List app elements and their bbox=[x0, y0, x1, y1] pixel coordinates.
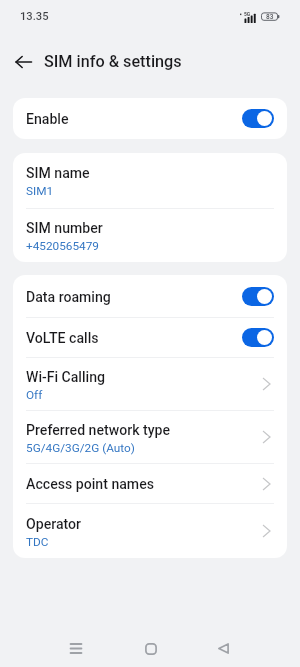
staticText: Enable bbox=[26, 111, 69, 128]
button[interactable]: Recent apps bbox=[53, 626, 98, 667]
button[interactable]: Wi-Fi Calling bbox=[13, 358, 287, 410]
button[interactable]: Enable bbox=[13, 98, 287, 139]
staticText: 13.35 bbox=[20, 10, 49, 23]
staticText: SIM1 bbox=[26, 184, 54, 198]
staticText: 5G/4G/3G/2G (Auto) bbox=[26, 441, 135, 455]
button[interactable]: VoLTE calls bbox=[13, 318, 287, 357]
staticText: SIM name bbox=[26, 165, 90, 182]
button[interactable]: Data roaming bbox=[13, 275, 287, 317]
button[interactable]: Preferred network type bbox=[13, 411, 287, 463]
staticText: TDC bbox=[26, 535, 49, 549]
button[interactable]: Operator bbox=[13, 504, 287, 558]
button[interactable]: Home bbox=[128, 626, 173, 667]
staticText: Off bbox=[26, 388, 43, 402]
staticText: Data roaming bbox=[26, 289, 111, 306]
staticText: Wi-Fi Calling bbox=[26, 369, 105, 386]
button[interactable]: SIM name bbox=[13, 153, 287, 208]
staticText: +4520565479 bbox=[26, 239, 99, 253]
button[interactable]: Back bbox=[201, 626, 246, 667]
button[interactable]: SIM number bbox=[13, 209, 287, 262]
staticText: 83 bbox=[266, 13, 274, 21]
staticText: 5G bbox=[244, 11, 251, 17]
staticText: SIM info & settings bbox=[44, 52, 182, 71]
staticText: Operator bbox=[26, 516, 82, 533]
button[interactable]: Back bbox=[4, 42, 43, 81]
staticText: VoLTE calls bbox=[26, 330, 99, 347]
staticText: SIM number bbox=[26, 220, 103, 237]
staticText: Access point names bbox=[26, 476, 154, 493]
staticText: Preferred network type bbox=[26, 422, 171, 439]
button[interactable]: Access point names bbox=[13, 464, 287, 503]
